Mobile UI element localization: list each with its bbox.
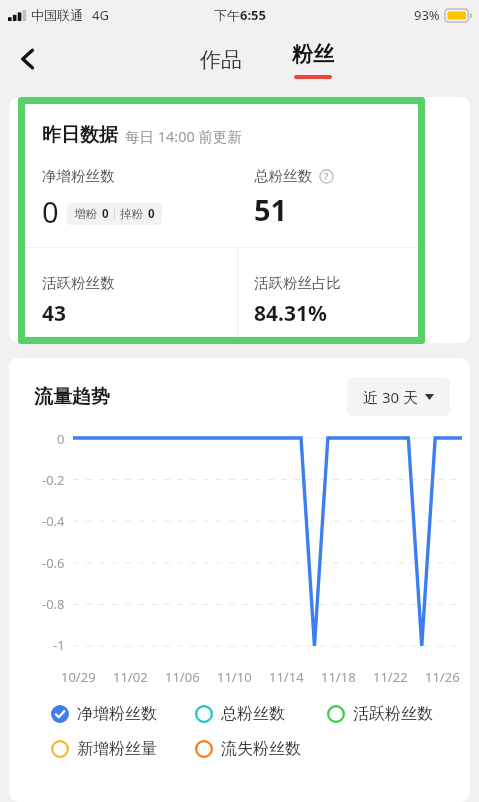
staticText: 中国联通 [31, 7, 83, 23]
button[interactable]: 活跃粉丝数 [327, 704, 433, 724]
staticText: 掉粉 [120, 207, 143, 221]
staticText: 0 [102, 206, 109, 222]
staticText: 11/14 [269, 668, 304, 686]
staticText: -0.2 [42, 471, 65, 489]
staticText: 93% [414, 6, 440, 24]
staticText: 增粉 [74, 207, 97, 221]
staticText: 净增粉丝数 [77, 704, 157, 724]
staticText: -0.4 [42, 512, 65, 530]
staticText: 11/06 [165, 668, 200, 686]
staticText: ? [324, 170, 329, 183]
staticText: 总粉丝数 [254, 167, 312, 185]
staticText: 11/10 [217, 668, 252, 686]
staticText: 4G [92, 6, 109, 24]
staticText: 近 30 天 [363, 387, 418, 407]
staticText: -0.8 [42, 595, 65, 613]
staticText: 粉丝 [292, 41, 334, 67]
staticText: 活跃粉丝占比 [254, 274, 341, 292]
staticText: 流失粉丝数 [221, 739, 301, 759]
staticText: 84.31% [254, 299, 327, 328]
staticText: 10/29 [61, 668, 96, 686]
staticText: 0 [148, 206, 155, 222]
staticText: 43 [42, 299, 67, 328]
button[interactable]: 流失粉丝数 [195, 739, 327, 759]
button[interactable]: 新增粉丝量 [51, 739, 195, 759]
button[interactable]: Back [4, 35, 52, 83]
button[interactable]: 近 30 天 [347, 378, 450, 416]
staticText: -0.6 [42, 554, 65, 572]
staticText: 6:55 [240, 6, 266, 24]
staticText: 11/02 [113, 668, 148, 686]
staticText: 昨日数据 [42, 123, 118, 147]
staticText: -1 [53, 636, 65, 654]
button[interactable]: 净增粉丝数 [51, 704, 195, 724]
staticText: 净增粉丝数 [42, 167, 115, 185]
staticText: 每日 14:00 前更新 [125, 126, 243, 146]
staticText: 总粉丝数 [221, 704, 285, 724]
staticText: 0 [42, 192, 59, 231]
staticText: 下午 [214, 7, 240, 23]
staticText: 活跃粉丝数 [42, 274, 115, 292]
staticText: 活跃粉丝数 [353, 704, 433, 724]
staticText: 11/18 [321, 668, 356, 686]
staticText: 新增粉丝量 [77, 739, 157, 759]
button[interactable]: 作品 [188, 39, 254, 81]
button[interactable]: 总粉丝数 [195, 704, 327, 724]
button[interactable]: Help [319, 169, 334, 184]
staticText: 51 [254, 190, 288, 229]
button[interactable]: 粉丝 [280, 41, 346, 79]
staticText: 0 [57, 430, 65, 448]
staticText: 11/22 [373, 668, 408, 686]
staticText: 作品 [200, 47, 242, 73]
staticText: 11/26 [425, 668, 460, 686]
staticText: 流量趋势 [34, 385, 110, 409]
